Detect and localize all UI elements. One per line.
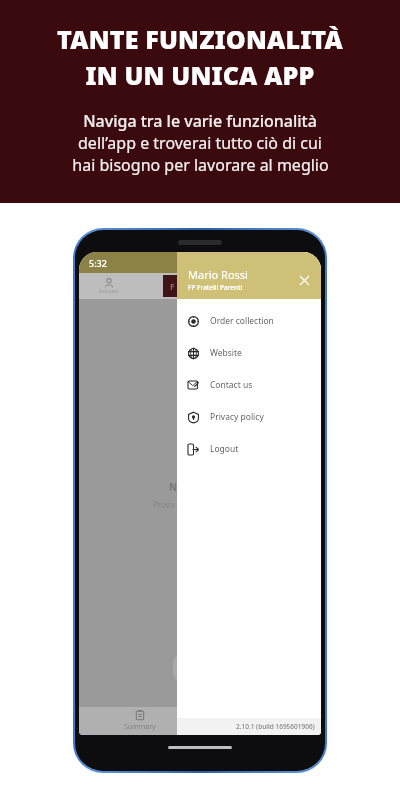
button[interactable]: Privacy policy — [177, 401, 321, 433]
staticText: 2.10.1 (build 1695601906) — [236, 722, 315, 731]
staticText: 5:32 — [89, 257, 107, 269]
button[interactable]: Logout — [177, 433, 321, 465]
staticText: TANTE FUNZIONALITÀ — [57, 22, 343, 56]
staticText: IN UN UNICA APP — [85, 58, 315, 92]
button[interactable]: Contact us — [177, 369, 321, 401]
staticText: Mario Rossi — [188, 267, 248, 282]
button[interactable]: Website — [177, 337, 321, 369]
staticText: Summary — [124, 722, 156, 732]
staticText: Account — [99, 288, 119, 295]
button[interactable]: Order collection — [177, 305, 321, 337]
button[interactable]: Summary — [124, 710, 156, 732]
staticText: Contact us — [210, 379, 253, 391]
staticText: dell’app e troverai tutto ciò di cui — [78, 132, 322, 154]
staticText: Logout — [210, 443, 239, 455]
staticText: Nessun dato — [169, 480, 232, 494]
staticText: Prova a scorrere in basso — [153, 499, 248, 510]
staticText: F — [170, 281, 175, 292]
staticText: Privacy policy — [210, 411, 264, 423]
button[interactable]: Close — [295, 271, 313, 289]
staticText: Order collection — [210, 315, 274, 327]
staticText: FP Fratelli Parenti — [188, 283, 243, 292]
staticText: Website — [210, 347, 242, 359]
staticText: hai bisogno per lavorare al meglio — [72, 154, 329, 176]
staticText: Naviga tra le varie funzionalità — [83, 110, 317, 132]
button[interactable]: Nuovo — [173, 655, 227, 681]
